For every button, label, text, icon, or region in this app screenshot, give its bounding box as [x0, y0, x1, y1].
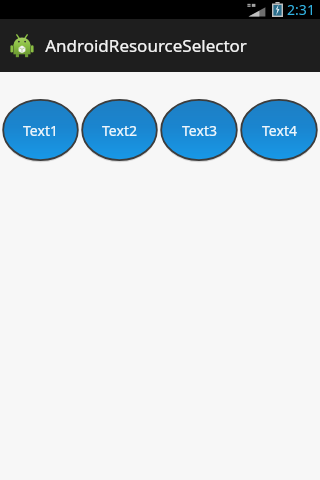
staticText: Text2: [102, 121, 137, 140]
other: App icon: [9, 33, 35, 59]
staticText: AndroidResourceSelector: [45, 34, 247, 57]
staticText: Text3: [182, 121, 217, 140]
button[interactable]: Text3: [160, 98, 238, 162]
staticText: Text1: [23, 121, 58, 140]
other: Signal strength 3G: [247, 3, 267, 17]
button[interactable]: Text4: [240, 98, 318, 162]
button[interactable]: Text1: [2, 98, 79, 162]
staticText: 2:31: [287, 0, 315, 19]
staticText: Text4: [262, 121, 297, 140]
button[interactable]: Text2: [81, 98, 158, 162]
other: Battery charging: [272, 2, 283, 17]
